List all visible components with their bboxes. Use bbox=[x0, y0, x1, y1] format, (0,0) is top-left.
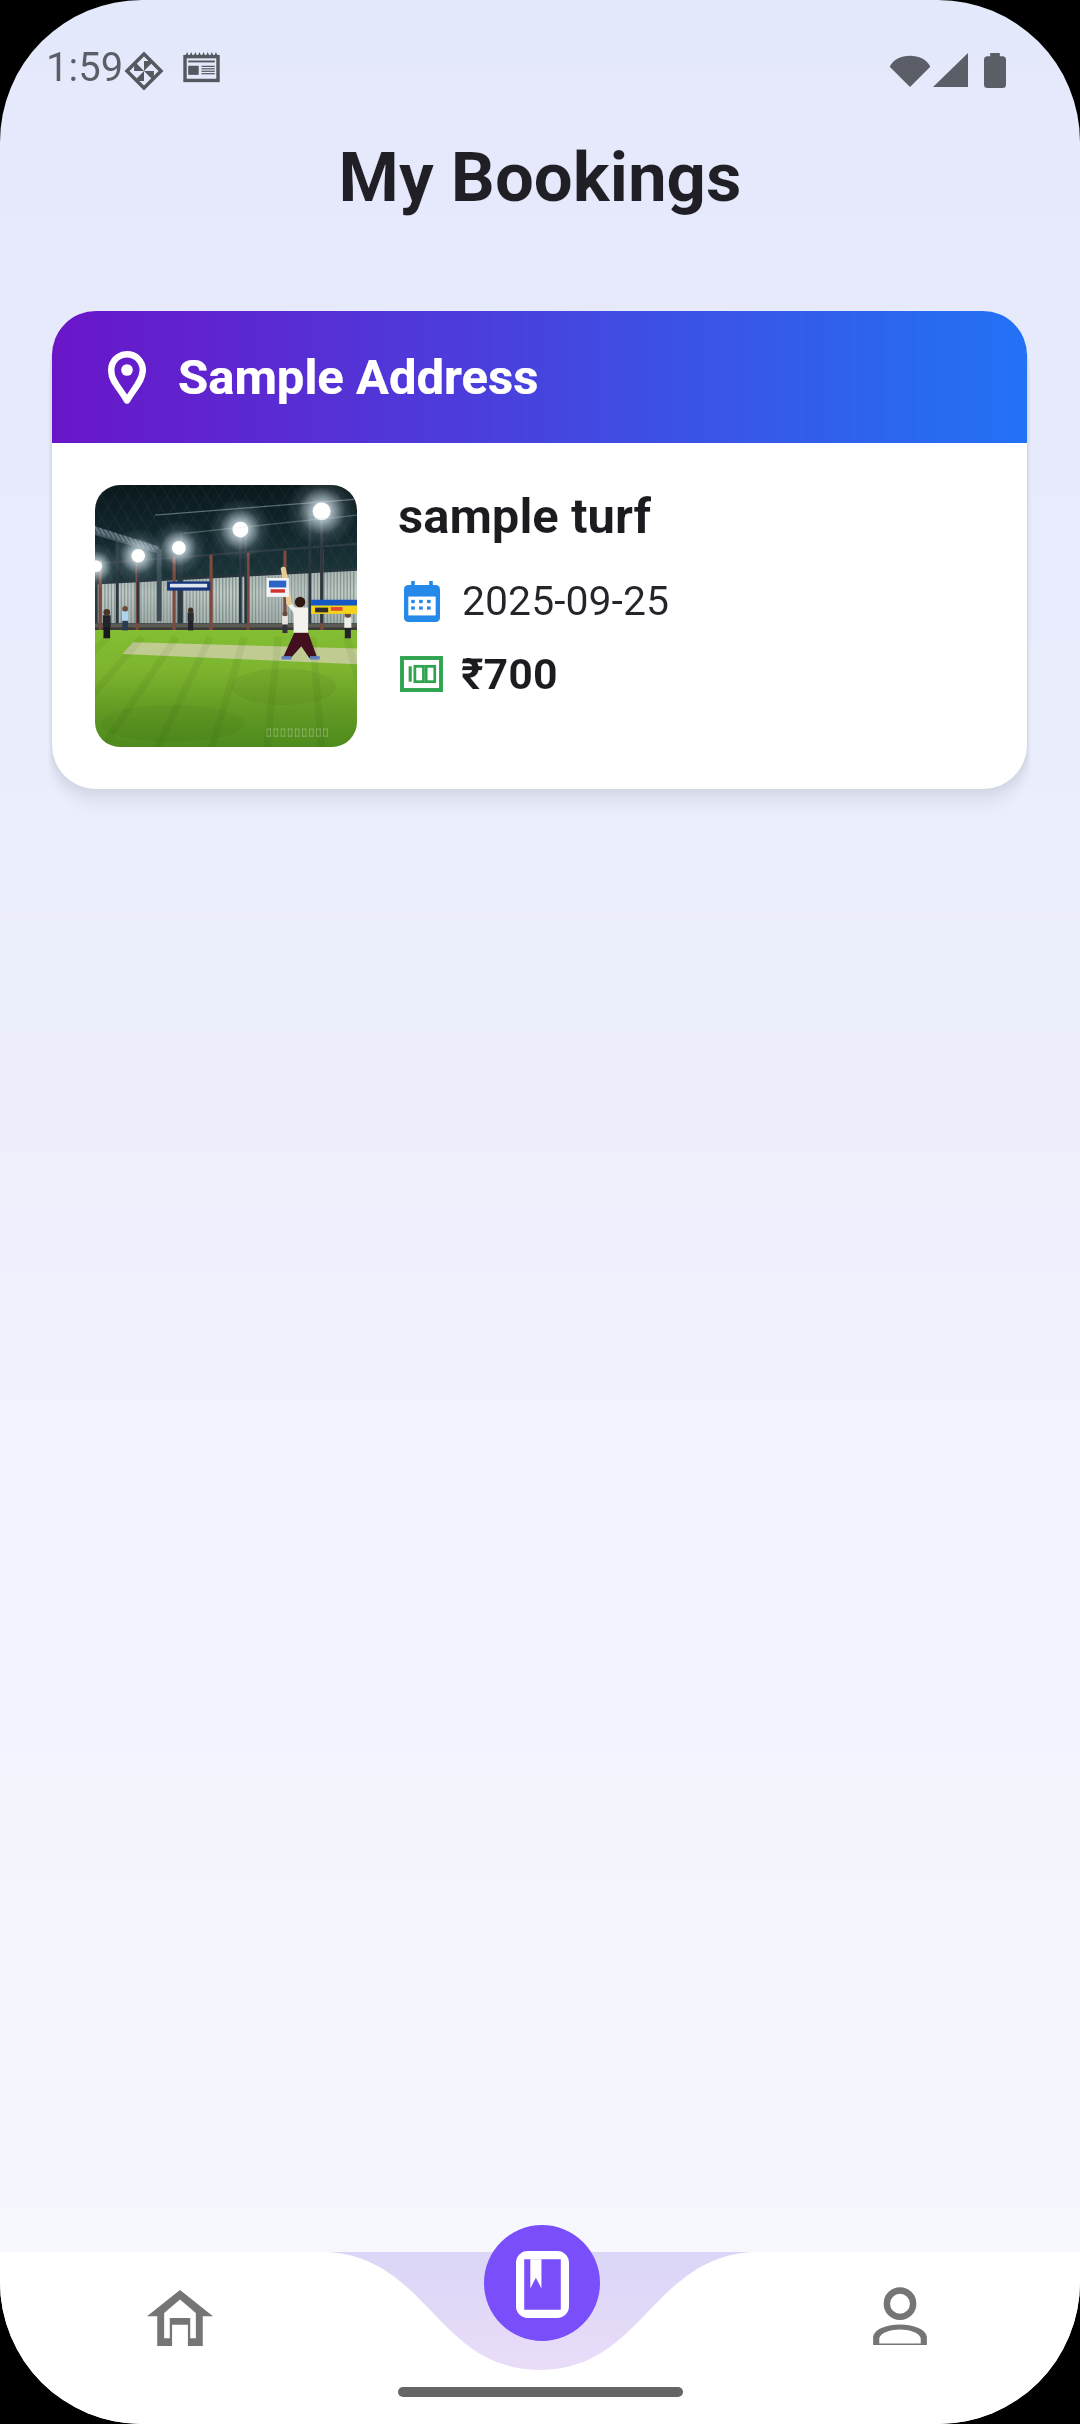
button[interactable]: Bookings bbox=[484, 2225, 600, 2341]
staticText: ₹700 bbox=[461, 649, 558, 699]
button[interactable]: Sample Address bbox=[52, 311, 1027, 789]
button[interactable]: Home bbox=[120, 2258, 240, 2378]
staticText: 2025-09-25 bbox=[462, 577, 670, 625]
staticText: My Bookings bbox=[0, 137, 1080, 218]
staticText: Sample Address bbox=[178, 349, 539, 406]
staticText: 1:59 bbox=[46, 44, 124, 91]
staticText: sample turf bbox=[398, 488, 651, 545]
button[interactable]: Profile bbox=[840, 2258, 960, 2378]
